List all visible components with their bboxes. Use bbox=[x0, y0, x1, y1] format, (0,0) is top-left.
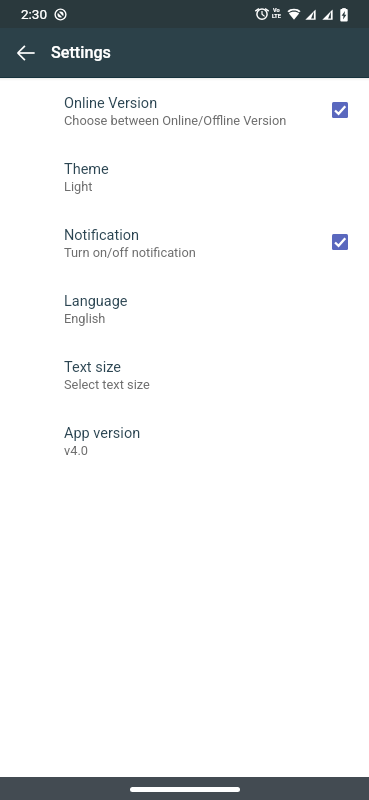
staticText: Notification bbox=[64, 227, 139, 244]
button[interactable]: App version bbox=[0, 408, 369, 474]
button[interactable]: Back bbox=[8, 35, 44, 71]
staticText: Select text size bbox=[64, 377, 150, 392]
staticText: Settings bbox=[51, 43, 111, 62]
staticText: Vo bbox=[273, 7, 280, 13]
button[interactable]: Theme bbox=[0, 144, 369, 210]
staticText: Online Version bbox=[64, 95, 158, 112]
button[interactable]: Text size bbox=[0, 342, 369, 408]
staticText: Text size bbox=[64, 359, 121, 376]
button[interactable]: Toggle Online Version bbox=[332, 102, 348, 118]
button[interactable]: Language bbox=[0, 276, 369, 342]
staticText: Turn on/off notification bbox=[64, 245, 196, 260]
staticText: v4.0 bbox=[64, 443, 88, 458]
button[interactable]: Notification bbox=[0, 210, 369, 276]
staticText: 2:30 bbox=[21, 6, 48, 22]
staticText: LTE bbox=[272, 13, 281, 19]
button[interactable]: Toggle Notification bbox=[332, 234, 348, 250]
staticText: Choose between Online/Offline Version bbox=[64, 113, 287, 128]
staticText: Light bbox=[64, 179, 93, 194]
staticText: English bbox=[64, 311, 106, 326]
staticText: Theme bbox=[64, 161, 109, 178]
staticText: App version bbox=[64, 425, 141, 442]
staticText: Language bbox=[64, 293, 128, 310]
button[interactable]: Online Version bbox=[0, 78, 369, 144]
